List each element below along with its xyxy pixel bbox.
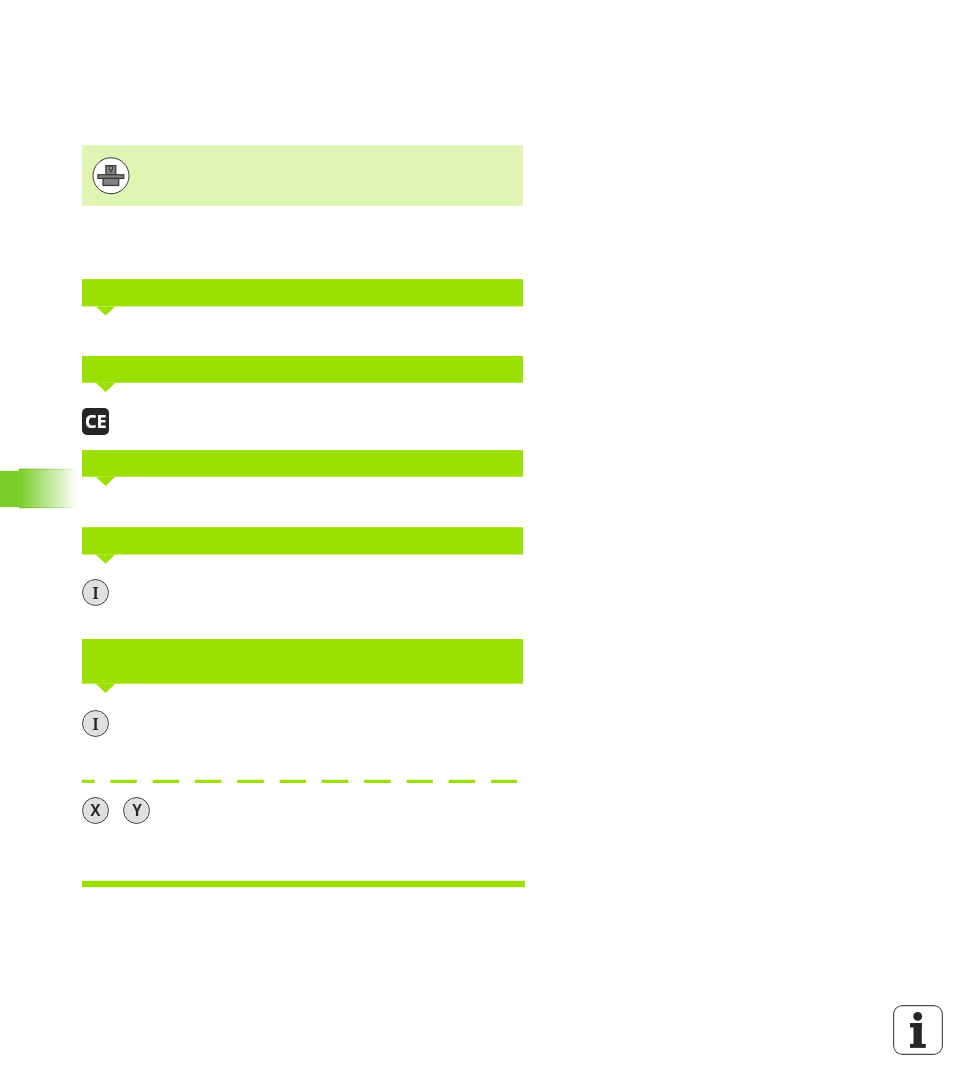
button[interactable]: CE [82,408,109,435]
button[interactable]: I [82,579,109,606]
button[interactable]: Row 5 [82,639,523,684]
button[interactable]: Y [123,797,150,824]
staticText: X [90,799,101,820]
button[interactable]: Info [893,1005,943,1055]
button[interactable]: I [82,710,109,737]
button[interactable]: Row 2 [82,356,523,383]
staticText: CE [85,409,107,434]
staticText: I [92,712,99,734]
staticText: Y [132,799,142,820]
staticText: I [92,581,99,603]
button[interactable]: Row 3 [82,450,523,477]
button[interactable]: X [82,797,109,824]
button[interactable]: Row 1 [82,279,523,306]
button[interactable]: Row 4 [82,527,523,554]
button[interactable]: Machine [92,157,130,195]
